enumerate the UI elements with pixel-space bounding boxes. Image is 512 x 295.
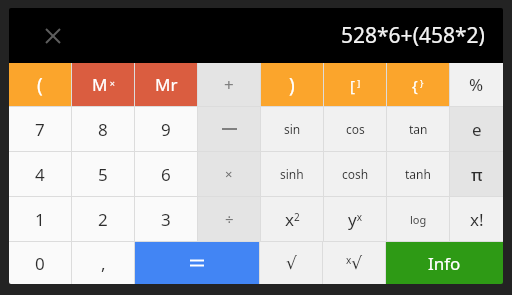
button[interactable]: Open parenthesis: [9, 63, 71, 106]
staticText: 1: [35, 208, 45, 231]
button[interactable]: Zero: [9, 242, 71, 284]
button[interactable]: Tangent: [387, 107, 449, 151]
staticText: (: [37, 72, 43, 98]
staticText: %: [469, 73, 484, 96]
button[interactable]: Euler number: [450, 107, 503, 151]
button[interactable]: Info: [386, 242, 503, 284]
staticText: Mr: [155, 73, 178, 96]
staticText: x√: [346, 253, 363, 273]
staticText: ): [289, 72, 295, 98]
staticText: 2: [98, 208, 108, 231]
staticText: π: [471, 163, 483, 186]
staticText: tanh: [405, 166, 431, 182]
button[interactable]: Multiply: [198, 152, 260, 196]
staticText: 8: [98, 118, 108, 141]
staticText: M ×: [92, 73, 115, 96]
staticText: cosh: [342, 166, 369, 182]
staticText: 0: [35, 252, 45, 275]
staticText: Info: [428, 252, 461, 275]
staticText: tan: [409, 121, 428, 137]
staticText: yx: [348, 208, 362, 231]
button[interactable]: Square root: [260, 242, 322, 284]
staticText: x!: [470, 208, 484, 231]
staticText: { }: [412, 75, 424, 95]
button[interactable]: Three: [135, 197, 197, 241]
button[interactable]: Nine: [135, 107, 197, 151]
button[interactable]: Memory store: [72, 63, 134, 106]
button[interactable]: Decimal comma: [72, 242, 134, 284]
button[interactable]: Four: [9, 152, 71, 196]
button[interactable]: Pi: [450, 152, 503, 196]
staticText: ÷: [225, 209, 234, 229]
button[interactable]: Hyperbolic cosine: [324, 152, 386, 196]
button[interactable]: Sine: [261, 107, 323, 151]
staticText: ×: [225, 165, 233, 183]
staticText: 4: [35, 163, 45, 186]
button[interactable]: Eight: [72, 107, 134, 151]
staticText: sinh: [280, 166, 304, 182]
staticText: 6: [161, 163, 171, 186]
staticText: 9: [161, 118, 171, 141]
staticText: e: [472, 118, 482, 141]
button[interactable]: Six: [135, 152, 197, 196]
button[interactable]: Hyperbolic tangent: [387, 152, 449, 196]
staticText: +: [224, 73, 234, 96]
staticText: ,: [101, 252, 106, 275]
button[interactable]: Factorial: [450, 197, 503, 241]
staticText: sin: [284, 121, 301, 137]
button[interactable]: Plus: [198, 63, 260, 106]
button[interactable]: Percent: [450, 63, 503, 106]
button[interactable]: Logarithm: [387, 197, 449, 241]
staticText: 7: [35, 118, 45, 141]
button[interactable]: Equals: [135, 242, 259, 284]
button[interactable]: Five: [72, 152, 134, 196]
button[interactable]: Divide: [198, 197, 260, 241]
button[interactable]: x-th root: [323, 242, 385, 284]
staticText: x2: [285, 208, 300, 231]
button[interactable]: y to the power x: [324, 197, 386, 241]
button[interactable]: Curly brackets: [387, 63, 449, 106]
button[interactable]: Close parenthesis: [261, 63, 323, 106]
staticText: cos: [346, 121, 365, 137]
staticText: log: [410, 212, 427, 227]
button[interactable]: Hyperbolic sine: [261, 152, 323, 196]
staticText: 528*6+(458*2): [341, 21, 485, 50]
staticText: √: [286, 253, 297, 273]
button[interactable]: Cosine: [324, 107, 386, 151]
staticText: 3: [161, 208, 171, 231]
button[interactable]: x squared: [261, 197, 323, 241]
button[interactable]: Seven: [9, 107, 71, 151]
staticText: [ ]: [350, 75, 361, 95]
button[interactable]: Minus: [198, 107, 260, 151]
button[interactable]: One: [9, 197, 71, 241]
button[interactable]: Clear: [31, 14, 75, 58]
button[interactable]: Square brackets: [324, 63, 386, 106]
staticText: 5: [98, 163, 108, 186]
button[interactable]: Two: [72, 197, 134, 241]
button[interactable]: Memory recall: [135, 63, 197, 106]
